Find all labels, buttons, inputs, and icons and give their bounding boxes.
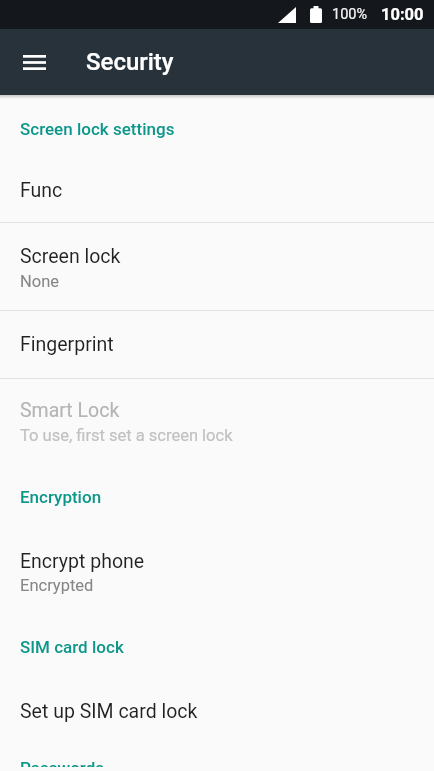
staticText: SIM card lock	[20, 637, 124, 657]
staticText: Security	[86, 48, 174, 76]
button[interactable]: Encrypt phone	[0, 548, 434, 596]
button[interactable]: Func	[0, 163, 434, 222]
staticText: Passwords	[20, 758, 105, 767]
staticText: Screen lock settings	[20, 119, 175, 139]
staticText: Func	[20, 179, 63, 202]
staticText: Encrypt phone	[20, 550, 145, 573]
staticText: Smart Lock	[20, 399, 120, 422]
staticText: To use, first set a screen lock	[20, 426, 233, 445]
staticText: Screen lock	[20, 245, 121, 268]
staticText: Encrypted	[20, 576, 94, 595]
staticText: 100%	[332, 6, 368, 23]
button[interactable]: Set up SIM card lock	[0, 698, 434, 738]
staticText: 10:00	[381, 5, 424, 24]
button[interactable]: Fingerprint	[0, 311, 434, 378]
staticText: Fingerprint	[20, 333, 114, 356]
staticText: Set up SIM card lock	[20, 700, 198, 723]
button[interactable]: Screen lock	[0, 223, 434, 310]
staticText: Encryption	[20, 487, 102, 507]
staticText: None	[20, 272, 60, 291]
button[interactable]: Smart Lock	[0, 379, 434, 446]
button[interactable]	[12, 40, 56, 84]
